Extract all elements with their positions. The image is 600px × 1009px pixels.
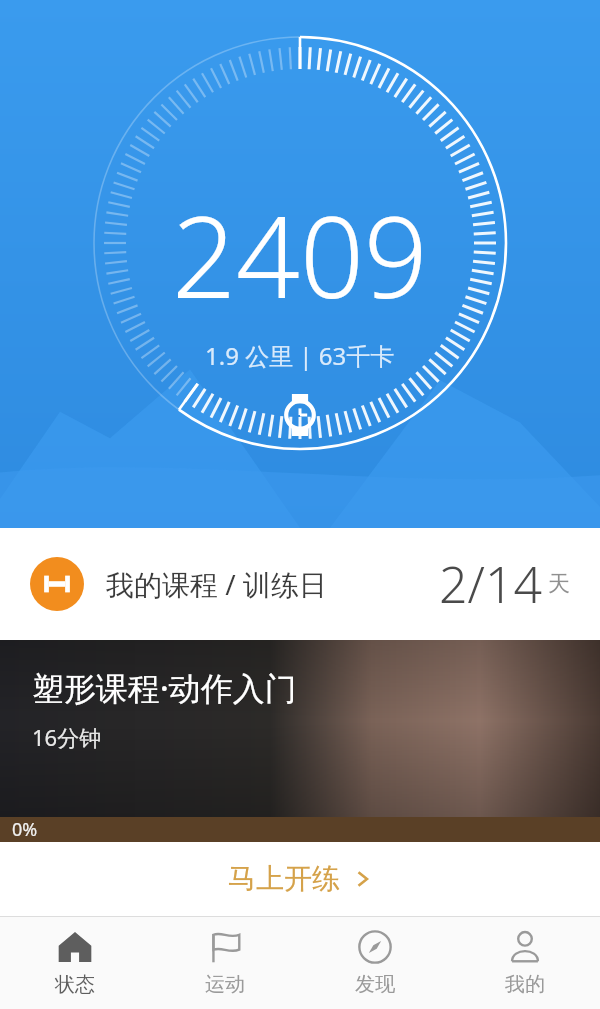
- button[interactable]: 状态: [0, 917, 150, 1009]
- staticText: 我的: [505, 972, 545, 997]
- staticText: 0%: [12, 817, 38, 842]
- other: 运动: [208, 930, 242, 964]
- staticText: 马上开练: [228, 861, 340, 896]
- staticText: 天: [548, 570, 570, 598]
- button[interactable]: 马上开练: [0, 842, 600, 915]
- staticText: 状态: [55, 972, 95, 997]
- staticText: 塑形课程·动作入门: [32, 666, 297, 710]
- staticText: 发现: [355, 972, 395, 997]
- other: 我的: [508, 930, 542, 964]
- other: 发现: [358, 930, 392, 964]
- staticText: 运动: [205, 972, 245, 997]
- other: 状态: [58, 930, 92, 964]
- button[interactable]: 塑形课程·动作入门: [0, 640, 600, 842]
- staticText: 1.9 公里 | 63千卡: [205, 339, 395, 372]
- button[interactable]: 我的: [450, 917, 600, 1009]
- button[interactable]: 我的课程 / 训练日: [0, 528, 600, 640]
- button[interactable]: 发现: [300, 917, 450, 1009]
- staticText: 2409: [172, 178, 428, 331]
- staticText: 2/14: [439, 550, 542, 618]
- button[interactable]: 运动: [150, 917, 300, 1009]
- staticText: 16分钟: [32, 722, 102, 752]
- staticText: 我的课程 / 训练日: [106, 565, 327, 603]
